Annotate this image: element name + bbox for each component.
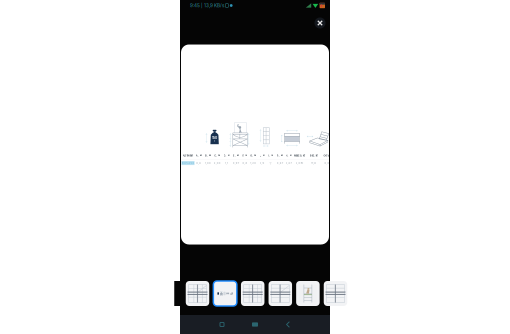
button[interactable]: Close <box>312 15 328 31</box>
staticText: 2,070 <box>296 161 304 165</box>
button[interactable]: Drawing 5 <box>296 281 320 306</box>
staticText: 1,1 <box>269 161 272 165</box>
staticText: G, м <box>250 154 256 157</box>
staticText: A, м <box>196 154 202 157</box>
button[interactable]: Drawing 6 <box>324 281 347 306</box>
staticText: h, м <box>277 154 283 157</box>
button[interactable]: ВСП-250 <box>181 161 194 165</box>
button[interactable]: Drawing 1 <box>186 281 209 306</box>
staticText: C, м <box>214 154 220 157</box>
button[interactable]: Back <box>277 315 299 334</box>
staticText: 0,9 <box>259 161 264 165</box>
staticText: E, м <box>233 154 239 157</box>
staticText: 1,20 <box>250 161 256 165</box>
staticText: D, м <box>223 154 229 157</box>
staticText: Вес, кг <box>310 154 318 157</box>
staticText: 0,67 <box>277 161 283 165</box>
button[interactable]: Drawing 2 <box>213 281 237 306</box>
staticText: 1,00 <box>205 161 211 165</box>
staticText: 0,67 <box>285 161 291 165</box>
staticText: 0,8 <box>242 161 247 165</box>
staticText: Объём <box>323 154 332 157</box>
staticText: 11,8 <box>311 161 316 165</box>
button[interactable]: Home <box>244 315 266 334</box>
button[interactable]: Drawing 3 <box>241 281 264 306</box>
button[interactable]: Recent apps <box>211 315 233 334</box>
staticText: 1,1 <box>225 161 228 165</box>
staticText: 0,06 <box>324 161 331 165</box>
staticText: L, м <box>259 154 264 157</box>
staticText: 2,00 <box>214 161 221 165</box>
staticText: 150 <box>212 136 217 140</box>
staticText: ВСП-250 <box>181 161 194 165</box>
staticText: 0,6 <box>196 161 201 165</box>
staticText: кг <box>214 140 216 142</box>
staticText: l, м <box>268 154 273 157</box>
button[interactable]: Drawing 4 <box>269 281 292 306</box>
staticText: F, м <box>242 154 247 157</box>
staticText: 9:45 | 13,9 KB/s <box>190 3 224 8</box>
staticText: B, м <box>205 154 211 157</box>
staticText: H, м <box>285 154 291 157</box>
staticText: 0,97 <box>233 161 239 165</box>
staticText: Масса, кг <box>294 154 305 157</box>
staticText: Артикул <box>182 154 193 157</box>
